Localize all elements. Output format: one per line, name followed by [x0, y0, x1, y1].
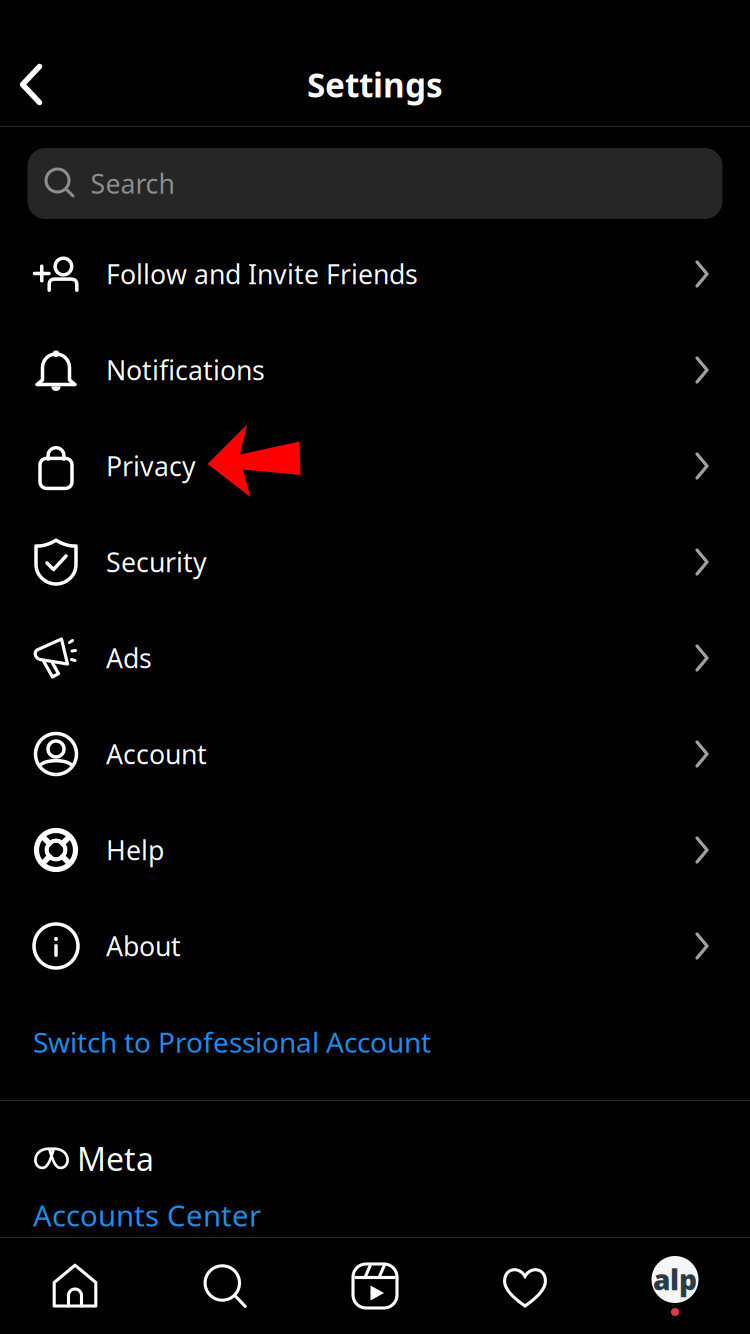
button[interactable]: Switch to Professional Account [0, 994, 750, 1090]
staticText: Accounts Center [33, 1195, 261, 1234]
button[interactable]: Reels [300, 1238, 450, 1334]
button[interactable]: Account [0, 706, 750, 802]
button[interactable]: Ads [0, 610, 750, 706]
button[interactable]: Privacy [0, 418, 750, 514]
button[interactable]: Search [27, 148, 722, 219]
staticText: Security [106, 544, 207, 580]
staticText: Help [106, 832, 164, 868]
staticText: Notifications [106, 352, 265, 388]
staticText: Privacy [106, 448, 196, 484]
button[interactable]: Profile [600, 1238, 750, 1334]
staticText: Follow and Invite Friends [106, 256, 418, 292]
staticText: Meta [77, 1137, 154, 1180]
button[interactable]: Search [150, 1238, 300, 1334]
staticText: alp [653, 1261, 697, 1298]
staticText: Switch to Professional Account [33, 1023, 431, 1061]
button[interactable]: About [0, 898, 750, 994]
staticText: Settings [307, 62, 443, 107]
staticText: Account [106, 736, 207, 772]
staticText: About [106, 928, 181, 964]
button[interactable]: Accounts Center [0, 1187, 750, 1243]
button[interactable]: Activity [450, 1238, 600, 1334]
button[interactable]: Home [0, 1238, 150, 1334]
button[interactable]: Security [0, 514, 750, 610]
button[interactable]: Help [0, 802, 750, 898]
staticText: Ads [106, 640, 152, 676]
button[interactable]: Follow and Invite Friends [0, 226, 750, 322]
button[interactable]: Notifications [0, 322, 750, 418]
staticText: Search [90, 166, 174, 201]
button[interactable]: Back [2, 55, 60, 113]
